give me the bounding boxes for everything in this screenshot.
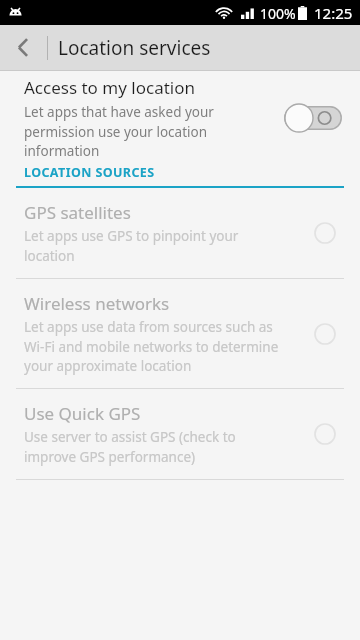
staticText: Let apps use GPS to pinpoint your locati… [24,227,239,265]
staticText: LOCATION SOURCES [24,164,155,181]
staticText: 100% [260,4,296,23]
button[interactable]: Access to my location [284,103,342,133]
button[interactable]: Wireless networks [0,279,360,388]
button[interactable]: Use Quick GPS [308,417,342,451]
staticText: Let apps that have asked your permission… [24,103,214,160]
button[interactable]: Back [0,25,46,70]
staticText: Let apps use data from sources such as W… [24,318,279,375]
button[interactable]: Wireless networks [308,317,342,351]
staticText: Location services [58,35,211,61]
button[interactable]: Use Quick GPS [0,389,360,479]
staticText: Wireless networks [24,292,170,315]
staticText: 12:25 [314,3,353,23]
staticText: Use server to assist GPS (check to impro… [24,428,236,466]
button[interactable]: Access to my location [0,71,360,164]
button[interactable]: GPS satellites [0,188,360,278]
staticText: Access to my location [24,76,195,99]
button[interactable]: GPS satellites [308,216,342,250]
staticText: GPS satellites [24,201,131,224]
staticText: Use Quick GPS [24,402,141,425]
